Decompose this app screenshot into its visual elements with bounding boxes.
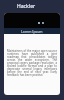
staticText: Hackler	[17, 3, 36, 10]
staticText: Lorem Ipsum	[21, 29, 43, 34]
button[interactable]: Hackler	[0, 0, 64, 12]
staticText: Maintainers of the major open source run…	[7, 49, 57, 77]
